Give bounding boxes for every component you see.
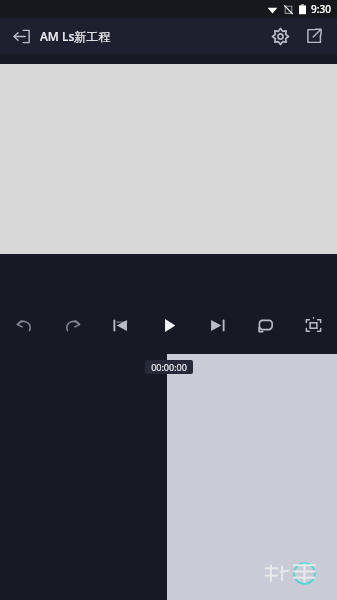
button[interactable]: Fit to screen: [293, 308, 333, 342]
staticText: AM Ls新工程: [40, 28, 111, 44]
staticText: 00:00:00: [151, 361, 187, 373]
button[interactable]: Skip to start: [100, 308, 140, 342]
button[interactable]: Play: [149, 308, 189, 342]
button[interactable]: Export: [297, 19, 331, 53]
button[interactable]: Back: [6, 21, 36, 51]
staticText: 9:30: [311, 2, 331, 16]
button[interactable]: Settings: [263, 19, 297, 53]
button[interactable]: Skip to end: [197, 308, 237, 342]
button[interactable]: Undo: [4, 308, 44, 342]
button[interactable]: 00:00:00: [145, 360, 193, 374]
button[interactable]: Loop: [245, 308, 285, 342]
button[interactable]: Redo: [52, 308, 92, 342]
